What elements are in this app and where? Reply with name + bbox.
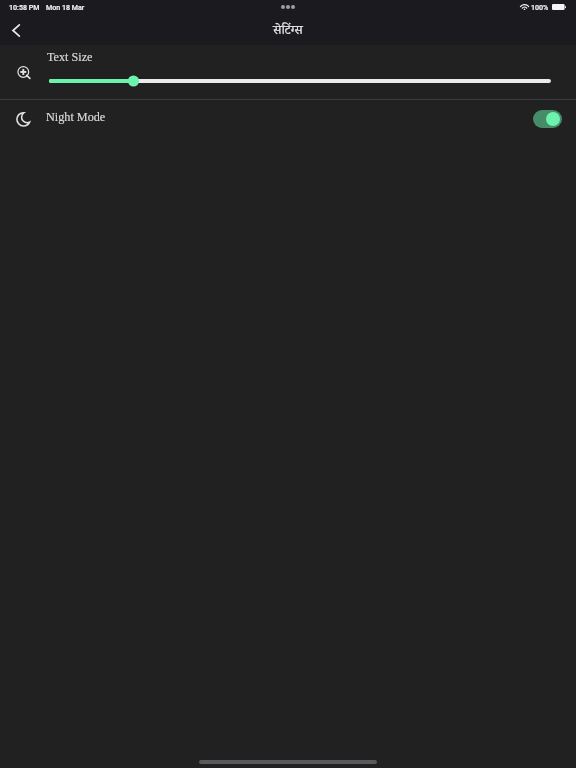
staticText: Text Size [47,50,93,64]
button[interactable]: Back [0,16,31,45]
staticText: 10:58 PM [9,3,40,11]
staticText: 100% [531,3,549,11]
button[interactable]: Night Mode toggle [533,110,562,128]
staticText: Mon 18 Mar [46,3,85,11]
staticText: सेटिंग्स [273,22,303,42]
button[interactable]: Text size slider [49,75,551,87]
button[interactable]: Text Size [0,45,576,99]
staticText: Night Mode [46,110,106,124]
button[interactable]: Night Mode [0,100,576,140]
